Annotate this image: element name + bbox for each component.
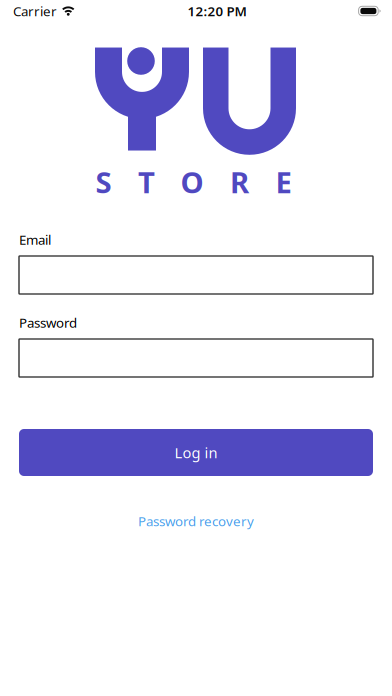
button[interactable]: Password bbox=[19, 339, 373, 377]
staticText: Password bbox=[19, 314, 77, 331]
staticText: Password recovery bbox=[138, 512, 254, 530]
button[interactable]: Password recovery bbox=[19, 509, 373, 533]
staticText: Email bbox=[19, 231, 51, 248]
staticText: Carrier bbox=[13, 2, 57, 20]
staticText: STORE bbox=[95, 162, 291, 201]
button[interactable]: Email bbox=[19, 256, 373, 294]
staticText: Log in bbox=[174, 443, 217, 462]
staticText: 12:20 PM bbox=[188, 2, 247, 20]
button[interactable]: Log in bbox=[19, 429, 373, 476]
